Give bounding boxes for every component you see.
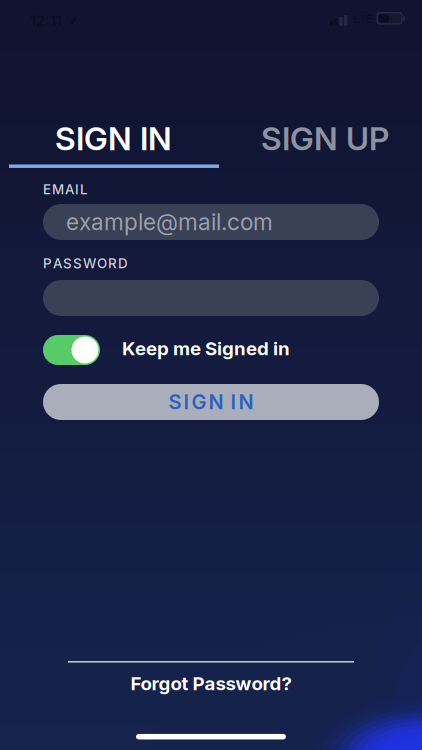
button[interactable]: Forgot Password? xyxy=(130,672,291,694)
staticText: LTE xyxy=(354,13,372,25)
button[interactable]: SIGN UP xyxy=(261,120,389,157)
staticText: S I G N I N xyxy=(168,390,253,414)
button[interactable]: Keep me Signed in xyxy=(43,335,100,365)
staticText: Forgot Password? xyxy=(130,672,291,694)
staticText: E M A I L xyxy=(43,182,88,197)
staticText: SIGN UP xyxy=(261,120,389,157)
button[interactable]: SIGN IN xyxy=(55,120,172,157)
staticText: SIGN IN xyxy=(55,120,172,157)
staticText: example@mail.com xyxy=(66,209,273,235)
staticText: Keep me Signed in xyxy=(122,337,290,359)
button[interactable]: S I G N I N xyxy=(43,384,379,420)
staticText: P A S S W O R D xyxy=(43,256,128,271)
staticText: 12:11 xyxy=(30,12,62,30)
